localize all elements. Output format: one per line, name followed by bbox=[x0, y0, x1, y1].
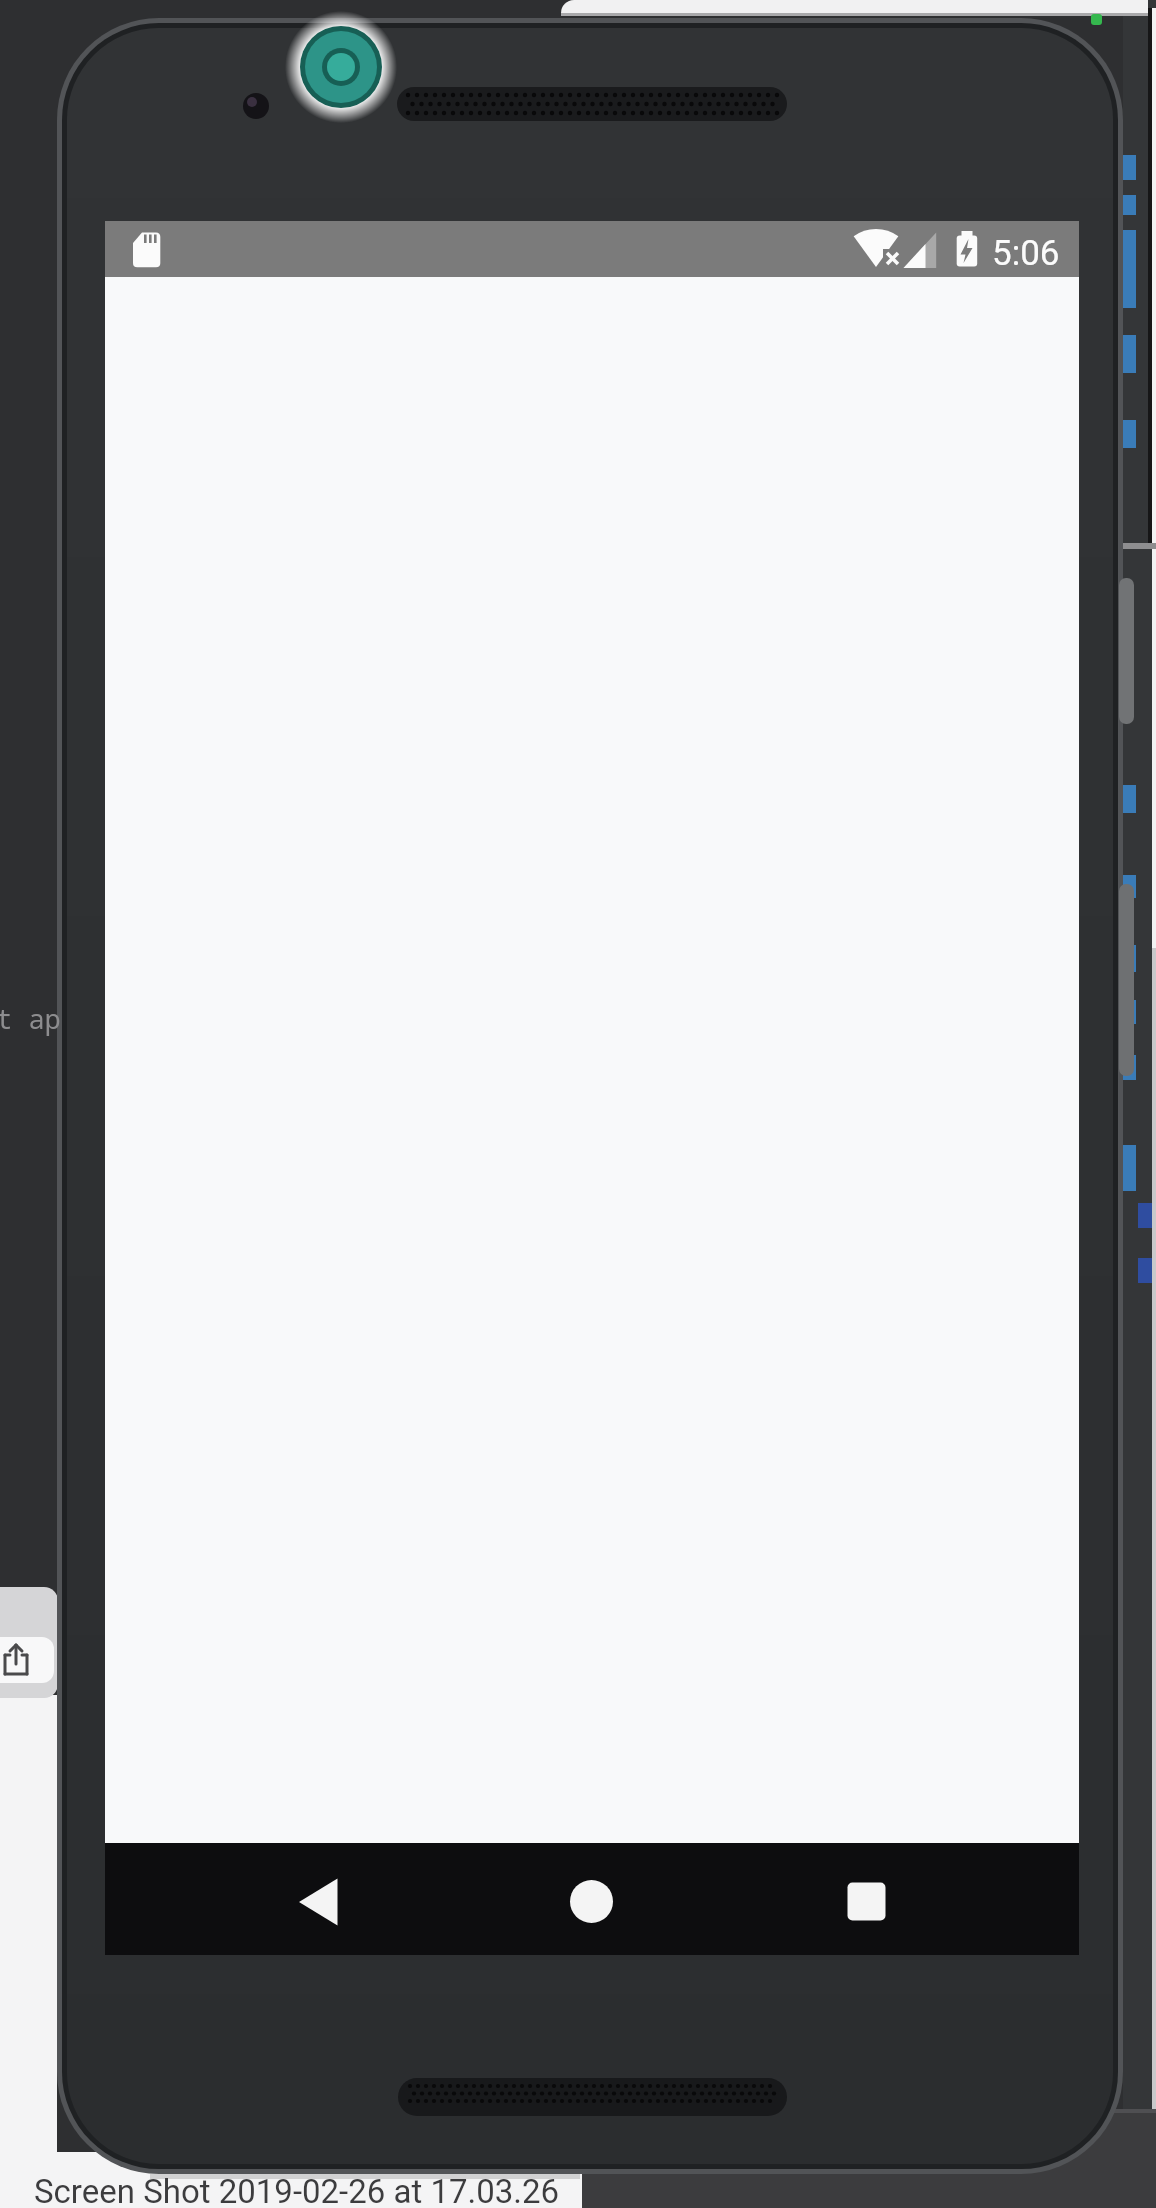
staticText: Screen Shot 2019-02-26 at 17.03.26 bbox=[34, 2172, 560, 2208]
button[interactable] bbox=[238, 1843, 398, 1955]
staticText: t ap bbox=[0, 1000, 61, 1036]
button[interactable] bbox=[786, 1843, 946, 1955]
staticText: 5:06 bbox=[992, 233, 1060, 274]
button[interactable] bbox=[0, 1637, 54, 1683]
button[interactable] bbox=[512, 1843, 672, 1955]
